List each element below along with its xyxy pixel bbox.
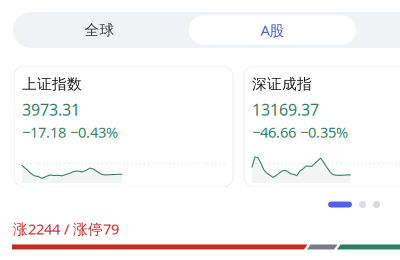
staticText: 上证指数 [22,75,82,93]
button[interactable]: A股 [186,12,359,48]
staticText: 深证成指 [252,75,312,93]
button[interactable]: 深证成指 [244,66,400,187]
staticText: 涨2244 / 涨停79 [13,219,119,238]
staticText: 13169.37 [252,99,319,120]
button[interactable]: 上证指数 [14,66,233,187]
staticText: −46.66 −0.35% [252,122,348,142]
staticText: 全球 [84,21,114,39]
staticText: −17.18 −0.43% [22,122,118,142]
button[interactable]: 全球 [13,12,186,48]
staticText: 3973.31 [22,99,80,120]
staticText: A股 [260,20,284,40]
